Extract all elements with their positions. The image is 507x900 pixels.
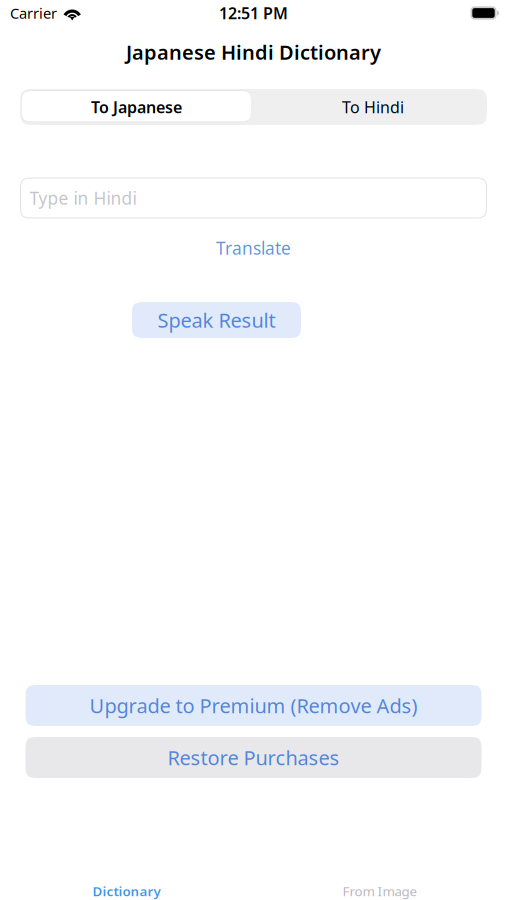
staticText: Upgrade to Premium (Remove Ads): [89, 692, 417, 719]
staticText: Dictionary: [92, 882, 160, 900]
staticText: To Hindi: [342, 96, 404, 118]
staticText: Type in Hindi: [29, 186, 136, 209]
button[interactable]: Dictionary: [0, 849, 253, 900]
staticText: 12:51 PM: [219, 2, 288, 24]
staticText: Restore Purchases: [167, 744, 339, 771]
button[interactable]: Upgrade to Premium (Remove Ads): [25, 685, 481, 726]
button[interactable]: To Japanese: [22, 91, 251, 123]
button[interactable]: Translate: [216, 238, 291, 258]
button[interactable]: Restore Purchases: [25, 737, 481, 778]
button[interactable]: From Image: [253, 849, 507, 900]
staticText: Japanese Hindi Dictionary: [126, 39, 381, 65]
staticText: Carrier: [10, 3, 57, 23]
button[interactable]: Speak Result: [132, 302, 301, 338]
staticText: Speak Result: [157, 307, 275, 333]
button[interactable]: To Hindi: [251, 91, 485, 123]
staticText: Translate: [216, 236, 291, 259]
staticText: To Japanese: [91, 96, 182, 118]
staticText: From Image: [342, 882, 417, 900]
